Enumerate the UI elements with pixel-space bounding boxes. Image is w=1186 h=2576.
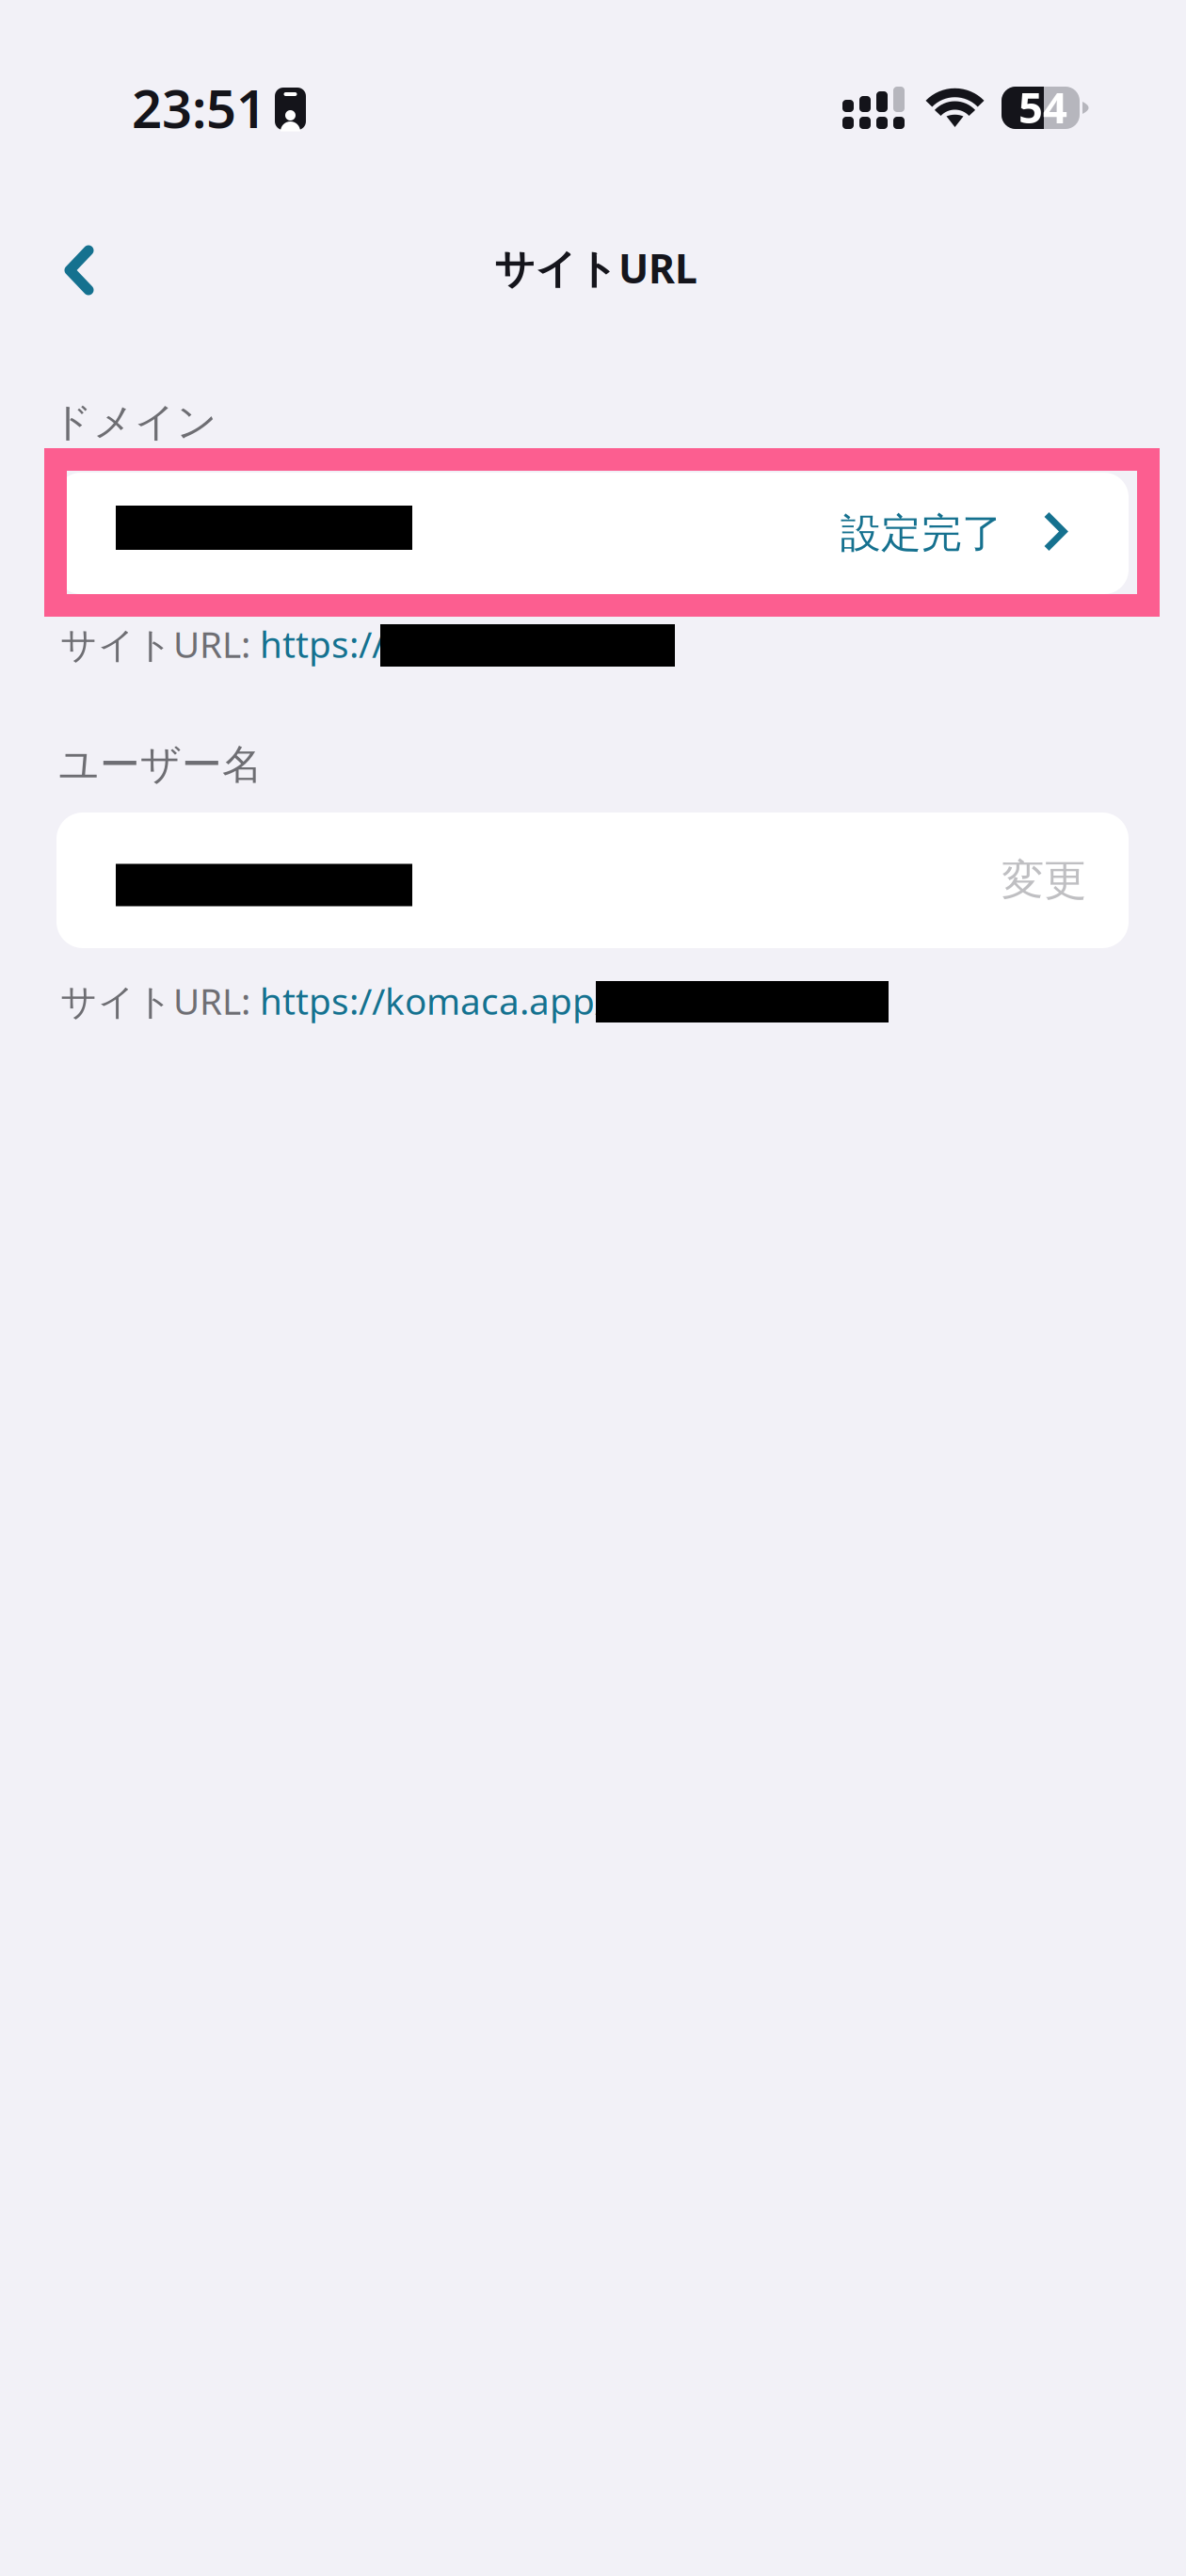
staticText: サイトURL: bbox=[60, 620, 260, 668]
button[interactable]: 設定完了 bbox=[56, 473, 1129, 594]
button[interactable]: 変更 bbox=[56, 813, 1129, 948]
button[interactable]: Back bbox=[53, 222, 133, 318]
staticText: https://komaca.app/ bbox=[260, 976, 608, 1025]
staticText: https://s bbox=[260, 620, 403, 668]
staticText: ユーザー名 bbox=[58, 740, 263, 789]
staticText: サイトURL bbox=[494, 241, 697, 294]
staticText: 54 bbox=[1018, 79, 1067, 135]
staticText: 変更 bbox=[1002, 854, 1086, 907]
staticText: ドメイン bbox=[52, 397, 217, 447]
staticText: サイトURL: bbox=[60, 976, 260, 1025]
staticText: 設定完了 bbox=[841, 509, 1002, 558]
staticText: 23:51 bbox=[132, 72, 266, 143]
